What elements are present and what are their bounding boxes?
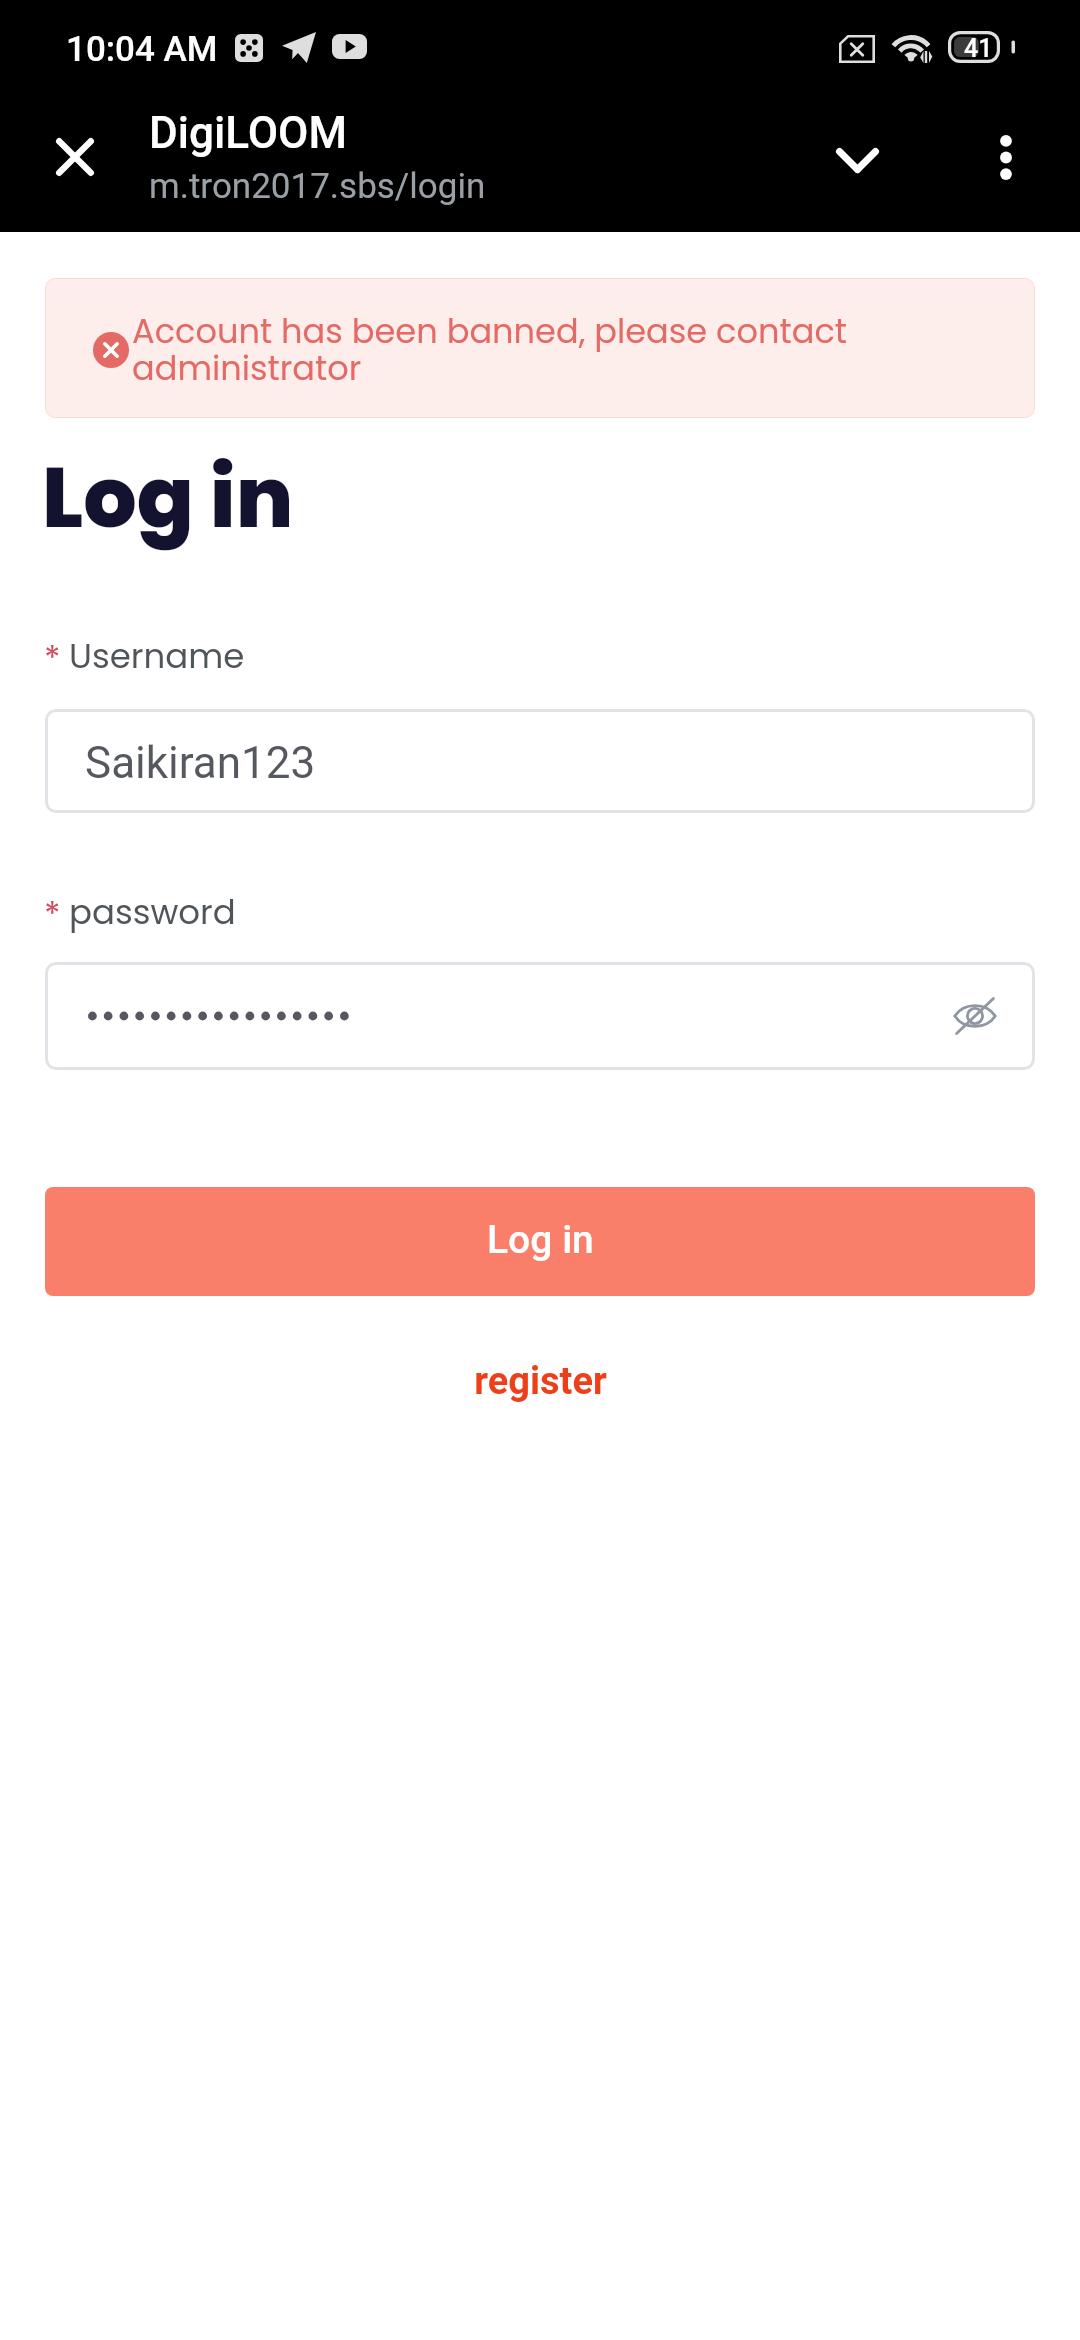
staticText: Log in (42, 439, 294, 557)
staticText: Username (69, 632, 245, 680)
button[interactable]: Show password (945, 986, 1005, 1046)
button[interactable]: More options (958, 109, 1054, 205)
button[interactable]: Log in (45, 1187, 1035, 1296)
staticText: Log in (487, 1217, 594, 1263)
staticText: Account has been banned, please contact … (132, 308, 877, 392)
button[interactable]: Saikiran123 (45, 709, 1035, 813)
button[interactable]: Expand (809, 112, 905, 208)
button[interactable]: Close (27, 109, 123, 205)
staticText: password (69, 888, 236, 936)
staticText: * (44, 634, 61, 682)
staticText: * (44, 890, 61, 938)
staticText: Saikiran123 (85, 737, 316, 789)
staticText: 41 (964, 34, 993, 63)
staticText: register (474, 1359, 607, 1404)
button[interactable]: register (410, 1359, 670, 1419)
button[interactable]: Show password (45, 962, 1035, 1070)
staticText: m.tron2017.sbs/login (149, 166, 486, 207)
staticText: DigiLOOM (149, 107, 347, 159)
staticText: 10:04 AM (66, 29, 218, 70)
